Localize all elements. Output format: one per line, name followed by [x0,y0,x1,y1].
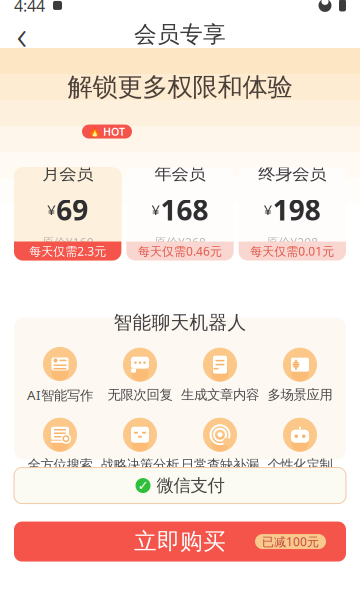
staticText: 每天仅需2.3元 [29,243,106,259]
staticText: 生成文章内容 [181,387,259,403]
staticText: 立即购买 [134,528,226,555]
staticText: ¥ [151,200,159,219]
staticText: 69 [56,191,88,228]
staticText: 原价¥268 [154,234,206,250]
staticText: 已减100元 [262,534,319,549]
button[interactable]: 立即购买 [14,522,346,562]
staticText: 多场景应用 [267,387,332,403]
button[interactable]: 战略决策分析 [100,418,180,473]
staticText: ¥ [47,200,55,219]
button[interactable]: 生成文章内容 [180,348,260,403]
staticText: 微信支付 [156,475,224,496]
staticText: 🔥 [89,126,101,137]
button[interactable]: 多场景应用 [260,348,340,403]
staticText: 4:44 [14,0,45,16]
button[interactable]: 日常查缺补漏 [180,418,260,473]
button[interactable]: 月会员 [14,168,121,261]
button[interactable]: ✓ [14,468,346,504]
button[interactable]: 全方位搜索 [20,418,100,473]
button[interactable]: 个性化定制 [260,418,340,473]
staticText: AI智能写作 [27,386,93,404]
staticText: HOT [103,124,125,139]
staticText: 168 [160,191,208,228]
staticText: 原价¥169 [42,234,94,250]
staticText: 终身会员 [258,163,326,184]
button[interactable]: 无限次回复 [100,348,180,403]
staticText: ‹ [16,8,27,61]
staticText: 每天仅需0.46元 [138,243,222,259]
button[interactable]: 年会员 [126,168,234,261]
staticText: 战略决策分析 [101,457,179,473]
staticText: 全方位搜索 [27,457,92,473]
staticText: 解锁更多权限和体验 [67,71,292,102]
staticText: 日常查缺补漏 [181,457,259,473]
button[interactable]: AI智能写作 [20,347,100,404]
staticText: 会员专享 [134,20,226,48]
staticText: 个性化定制 [267,457,332,473]
staticText: 智能聊天机器人 [113,311,246,334]
staticText: 年会员 [154,163,205,184]
button[interactable]: 终身会员 [239,168,346,261]
staticText: ✓ [137,478,148,493]
staticText: ¥ [264,200,272,219]
staticText: 原价¥298 [266,234,318,250]
staticText: 每天仅需0.01元 [250,243,334,259]
staticText: 198 [273,191,321,228]
button[interactable]: Back [0,19,44,49]
staticText: 月会员 [42,163,93,184]
staticText: 无限次回复 [107,387,172,403]
